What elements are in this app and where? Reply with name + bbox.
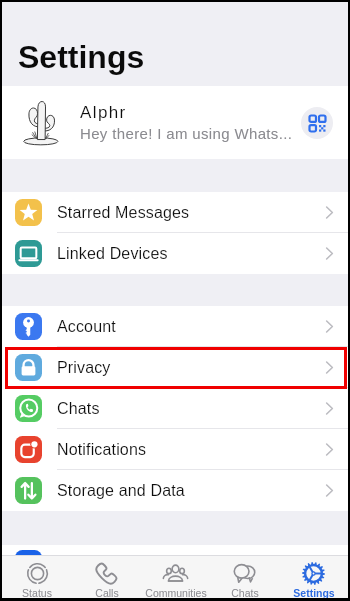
staticText: Starred Messages	[57, 204, 190, 222]
staticText: Settings	[293, 587, 335, 598]
button[interactable]: Chats	[2, 388, 348, 429]
staticText: Communities	[145, 587, 207, 598]
staticText: Account	[57, 318, 116, 336]
staticText: Hey there! I am using Whats...	[80, 125, 293, 142]
button[interactable]: Chats	[210, 556, 279, 598]
staticText: Storage and Data	[57, 482, 185, 500]
button[interactable]: Settings	[279, 556, 348, 598]
staticText: Status	[22, 587, 52, 598]
staticText: Chats	[231, 587, 259, 598]
button[interactable]: Calls	[72, 556, 141, 598]
staticText: Notifications	[57, 441, 147, 459]
button[interactable]: Notifications	[2, 429, 348, 470]
button[interactable]: Status	[2, 556, 72, 598]
button[interactable]: Account	[2, 306, 348, 347]
button[interactable]: Communities	[141, 556, 210, 598]
button[interactable]: Storage and Data	[2, 470, 348, 511]
button[interactable]: Linked Devices	[2, 233, 348, 274]
staticText: Chats	[57, 400, 100, 418]
button[interactable]: QR code	[301, 107, 333, 139]
button[interactable]: Starred Messages	[2, 192, 348, 233]
staticText: Calls	[95, 587, 119, 598]
button[interactable]: Privacy	[2, 347, 348, 388]
staticText: Privacy	[57, 359, 111, 377]
staticText: Linked Devices	[57, 245, 168, 263]
staticText: Alphr	[80, 103, 127, 122]
staticText: Settings	[18, 39, 145, 75]
button[interactable]: Alphr	[2, 86, 348, 159]
